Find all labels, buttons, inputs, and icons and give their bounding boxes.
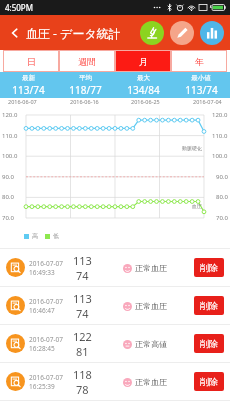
staticText: 74 xyxy=(76,306,89,321)
staticText: 16:46:47 xyxy=(29,306,55,315)
staticText: 2016-07-07 xyxy=(29,297,63,306)
staticText: 80.0 xyxy=(216,193,228,201)
staticText: 最小値 xyxy=(191,74,211,82)
staticText: 年 xyxy=(195,56,204,67)
button[interactable]: 2016-07-07 xyxy=(0,325,230,362)
button[interactable]: 2016-07-07 xyxy=(0,249,230,286)
button[interactable]: 日 xyxy=(3,50,59,72)
staticText: 113 xyxy=(73,253,92,268)
staticText: 110.0 xyxy=(2,132,18,140)
staticText: 70.0 xyxy=(2,214,14,222)
button[interactable]: 2016-07-07 xyxy=(0,287,230,324)
staticText: 16:49:33 xyxy=(29,268,55,277)
button[interactable]: Measure xyxy=(140,21,164,45)
staticText: 血圧 - データ統計 xyxy=(26,25,121,41)
staticText: 最大 xyxy=(137,74,150,82)
staticText: 最新 xyxy=(22,74,35,82)
button[interactable]: 年 xyxy=(171,50,227,72)
staticText: 日 xyxy=(27,56,36,67)
staticText: 2016-07-07 xyxy=(29,259,63,268)
staticText: 正常血圧 xyxy=(135,263,167,273)
staticText: 80.0 xyxy=(2,193,14,201)
staticText: 月 xyxy=(139,56,148,67)
button[interactable]: 週間 xyxy=(59,50,115,72)
staticText: 4:50PM xyxy=(5,2,33,13)
button[interactable]: 削除 xyxy=(194,334,224,353)
staticText: 2016-06-16 xyxy=(70,98,99,105)
staticText: 2016-06-25 xyxy=(131,98,160,105)
staticText: 113/74 xyxy=(185,83,218,97)
button[interactable]: 月 xyxy=(115,50,171,72)
staticText: 90.0 xyxy=(216,173,228,181)
staticText: 2016-07-07 xyxy=(29,373,63,382)
staticText: 2016-07-07 xyxy=(29,335,63,344)
button[interactable]: 削除 xyxy=(194,372,224,391)
staticText: 122 xyxy=(73,329,92,344)
staticText: 2016-07-04 xyxy=(193,98,222,105)
staticText: 正常血圧 xyxy=(135,301,167,311)
staticText: 血圧 xyxy=(192,203,202,209)
staticText: 90.0 xyxy=(2,173,14,181)
staticText: 120.0 xyxy=(212,111,228,119)
staticText: 高 xyxy=(32,232,38,240)
staticText: 週間 xyxy=(78,56,96,67)
staticText: 16:25:39 xyxy=(29,382,55,391)
button[interactable]: 削除 xyxy=(194,296,224,315)
staticText: 削除 xyxy=(200,262,218,273)
staticText: 81 xyxy=(76,344,89,359)
staticText: 74 xyxy=(76,268,89,283)
staticText: 118/77 xyxy=(69,83,102,97)
button[interactable]: Statistics xyxy=(200,21,224,45)
staticText: 削除 xyxy=(200,338,218,349)
button[interactable]: Back xyxy=(6,24,24,42)
staticText: 110.0 xyxy=(212,132,228,140)
staticText: 78 xyxy=(76,382,89,397)
staticText: 正常高値 xyxy=(135,339,167,349)
staticText: 16:28:45 xyxy=(29,344,55,353)
staticText: 削除 xyxy=(200,300,218,311)
button[interactable]: 2016-07-07 xyxy=(0,363,230,400)
button[interactable]: 削除 xyxy=(194,258,224,277)
staticText: 118 xyxy=(73,367,92,382)
staticText: 平均 xyxy=(79,74,92,82)
staticText: 動脈硬化 xyxy=(182,145,202,151)
staticText: 70.0 xyxy=(216,214,228,222)
staticText: 100.0 xyxy=(212,152,228,160)
staticText: 120.0 xyxy=(2,111,18,119)
staticText: 正常血圧 xyxy=(135,377,167,387)
staticText: 113/74 xyxy=(12,83,45,97)
staticText: 100.0 xyxy=(2,152,18,160)
staticText: 低 xyxy=(53,232,59,240)
staticText: 134/84 xyxy=(127,83,160,97)
button[interactable]: Edit xyxy=(170,21,194,45)
staticText: 削除 xyxy=(200,376,218,387)
staticText: 2016-06-07 xyxy=(8,98,37,105)
staticText: 113 xyxy=(73,291,92,306)
